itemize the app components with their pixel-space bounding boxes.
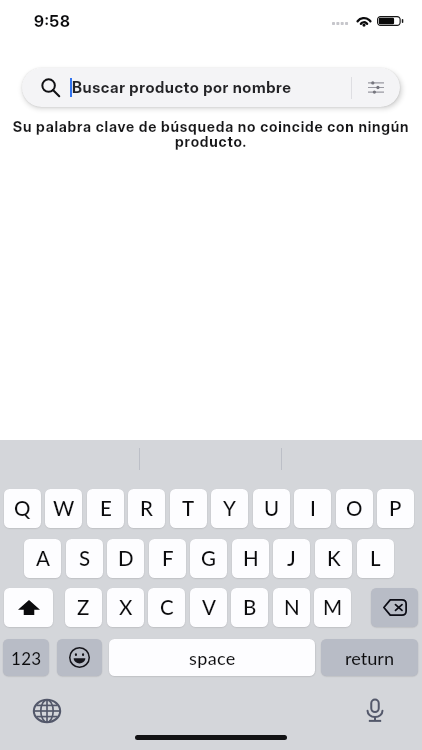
button[interactable]: Mayúsculas [4,588,53,627]
button[interactable]: B [231,588,268,627]
staticText: M [323,595,343,620]
button[interactable]: D [107,539,144,578]
staticText: R [140,496,153,521]
button[interactable]: G [190,539,227,578]
button[interactable]: K [315,539,352,578]
button[interactable]: S [66,539,103,578]
staticText: 9:58 [34,11,71,30]
staticText: K [327,546,341,571]
staticText: space [189,647,236,669]
staticText: S [79,546,91,571]
staticText: H [243,546,259,571]
staticText: V [202,595,216,620]
button[interactable]: C [148,588,185,627]
button[interactable]: O [336,489,373,528]
button[interactable]: Buscar producto por nombre [22,68,400,107]
button[interactable]: Cambiar idioma [32,696,62,726]
staticText: 123 [11,648,42,668]
staticText: Su palabra clave de búsqueda no coincide… [7,118,415,151]
staticText: B [243,595,257,620]
staticText: G [201,546,216,571]
staticText: P [389,496,402,521]
button[interactable]: return [321,639,418,676]
button[interactable]: M [314,588,351,627]
staticText: F [162,546,174,571]
button[interactable]: L [357,539,394,578]
staticText: Z [77,595,90,620]
staticText: C [160,595,174,620]
button[interactable]: A [24,539,61,578]
staticText: N [284,595,300,620]
button[interactable]: F [149,539,186,578]
button[interactable]: X [107,588,144,627]
staticText: J [287,546,296,571]
button[interactable]: N [273,588,310,627]
staticText: W [53,496,75,521]
staticText: X [119,595,133,620]
staticText: U [264,496,280,521]
button[interactable]: V [190,588,227,627]
staticText: Buscar producto por nombre [72,78,292,97]
button[interactable]: E [87,489,124,528]
button[interactable]: Q [4,489,41,528]
staticText: Q [14,496,31,521]
staticText: E [100,496,112,521]
button[interactable]: 123 [3,639,49,676]
button[interactable]: I [294,489,331,528]
button[interactable]: R [128,489,165,528]
button[interactable]: J [273,539,310,578]
button[interactable]: W [45,489,82,528]
button[interactable]: T [170,489,207,528]
staticText: A [36,546,50,571]
button[interactable]: H [232,539,269,578]
staticText: L [370,546,381,571]
button[interactable]: Emoji [57,639,102,676]
staticText: return [345,647,394,669]
staticText: O [346,496,363,521]
button[interactable]: Y [211,489,248,528]
button[interactable]: Z [65,588,102,627]
button[interactable]: space [109,639,315,676]
button[interactable]: Filtros [351,68,400,107]
button[interactable]: U [253,489,290,528]
button[interactable]: Dictado [360,696,390,726]
staticText: T [182,496,195,521]
staticText: D [118,546,134,571]
staticText: Y [223,496,236,521]
button[interactable]: P [377,489,414,528]
staticText: I [310,496,316,521]
button[interactable]: Borrar [371,588,418,627]
